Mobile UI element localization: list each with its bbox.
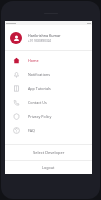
- button[interactable]: Logout: [5, 161, 92, 174]
- staticText: Logout: [42, 165, 55, 170]
- button[interactable]: App Tutorials: [5, 81, 92, 95]
- staticText: FAQ: [28, 128, 36, 133]
- button[interactable]: Notifications: [5, 67, 92, 81]
- staticText: Notifications: [28, 72, 50, 77]
- button[interactable]: Select Developer: [5, 145, 92, 160]
- button[interactable]: FAQ: [5, 123, 92, 137]
- staticText: +91 9330890324: [28, 39, 52, 43]
- staticText: Harikrishna Kumar: [28, 33, 61, 38]
- button[interactable]: Harikrishna Kumar: [5, 25, 92, 50]
- staticText: App Tutorials: [28, 86, 51, 91]
- staticText: Select Developer: [33, 150, 65, 155]
- button[interactable]: Home: [5, 53, 92, 67]
- staticText: Home: [28, 58, 39, 63]
- button[interactable]: Contact Us: [5, 95, 92, 109]
- staticText: Privacy Policy: [28, 114, 52, 119]
- staticText: Contact Us: [28, 100, 47, 105]
- button[interactable]: Privacy Policy: [5, 109, 92, 123]
